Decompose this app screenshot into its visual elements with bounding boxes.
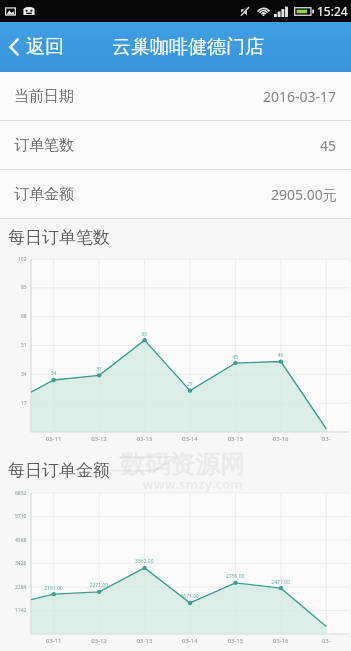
staticText: 2905.00元 (271, 185, 337, 204)
staticText: 订单笔数 (14, 136, 74, 155)
button[interactable]: 返回 (0, 29, 74, 65)
button[interactable]: 订单金额 (0, 170, 351, 218)
staticText: 返回 (26, 35, 64, 59)
staticText: 云巢咖啡健德门店 (112, 35, 264, 59)
staticText: 订单金额 (14, 185, 74, 204)
staticText: 15:24 (317, 3, 348, 19)
staticText: 2016-03-17 (263, 87, 337, 106)
staticText: 当前日期 (14, 87, 74, 106)
button[interactable]: 订单笔数 (0, 121, 351, 169)
button[interactable]: 当前日期 (0, 72, 351, 120)
staticText: 每日订单笔数 (8, 227, 110, 248)
staticText: 45 (320, 136, 337, 155)
staticText: 每日订单金额 (8, 460, 110, 481)
